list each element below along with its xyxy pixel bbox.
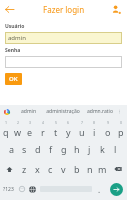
staticText: a (9, 143, 15, 155)
button[interactable]: admin (14, 105, 42, 118)
button[interactable]: Apagar (109, 159, 127, 179)
staticText: e (27, 126, 33, 138)
staticText: s (22, 143, 27, 155)
button[interactable]: 0 (114, 119, 127, 139)
staticText: . (98, 184, 101, 195)
button[interactable]: Shift (0, 159, 18, 179)
button[interactable]: g (57, 139, 70, 159)
button[interactable]: OK (5, 73, 22, 85)
button[interactable]: 7 (75, 119, 88, 139)
staticText: 9 (107, 120, 110, 125)
staticText: f (49, 143, 53, 155)
staticText: c (48, 163, 53, 175)
staticText: q (3, 126, 9, 138)
staticText: v (61, 163, 66, 175)
button[interactable]: Voltar (2, 2, 17, 17)
button[interactable]: 9 (101, 119, 114, 139)
staticText: o (105, 126, 111, 138)
button[interactable]: ?123 (0, 179, 16, 199)
staticText: w (14, 126, 22, 138)
button[interactable]: 4 (36, 119, 49, 139)
staticText: 4 (42, 120, 45, 125)
button[interactable]: . (94, 179, 105, 199)
staticText: 5 (55, 120, 58, 125)
staticText: k (100, 143, 105, 155)
staticText: x (35, 163, 40, 175)
staticText: admn.ratio (87, 108, 113, 115)
staticText: j (88, 143, 91, 155)
button[interactable]: b (70, 159, 83, 179)
button[interactable]: 6 (62, 119, 75, 139)
button[interactable]: v (57, 159, 70, 179)
staticText: z (22, 163, 27, 175)
staticText: t (54, 126, 58, 138)
staticText: n (87, 163, 93, 175)
staticText: m (98, 163, 107, 175)
staticText: p (118, 126, 124, 138)
button[interactable]: s (18, 139, 31, 159)
staticText: admin (21, 108, 36, 115)
button[interactable]: Mais opções (115, 105, 124, 118)
button[interactable]: z (18, 159, 31, 179)
staticText: r (41, 126, 45, 138)
staticText: 3 (29, 120, 32, 125)
button[interactable]: 2 (12, 119, 24, 139)
button[interactable]: 5 (49, 119, 62, 139)
button[interactable]: a (5, 139, 18, 159)
button[interactable]: m (96, 159, 109, 179)
button[interactable]: admn.ratio (84, 105, 115, 118)
staticText: 0 (120, 120, 123, 125)
staticText: d (35, 143, 41, 155)
staticText: y (66, 126, 71, 138)
button[interactable]: 3 (24, 119, 36, 139)
button[interactable]: Emoji (16, 179, 27, 199)
button[interactable]: c (44, 159, 57, 179)
staticText: ?123 (3, 186, 14, 193)
staticText: Usuário (5, 23, 25, 30)
staticText: b (74, 163, 80, 175)
button[interactable]: 8 (88, 119, 101, 139)
staticText: administração (46, 108, 80, 115)
staticText: g (61, 143, 67, 155)
staticText: OK (9, 75, 18, 83)
button[interactable]: Adicionar usuário (109, 2, 124, 17)
button[interactable]: 1 (0, 119, 12, 139)
button[interactable]: Alterar idioma (27, 179, 38, 199)
staticText: admin (8, 34, 26, 42)
staticText: u (79, 126, 85, 138)
button[interactable]: l (109, 139, 122, 159)
button[interactable]: j (83, 139, 96, 159)
staticText: l (114, 143, 117, 155)
button[interactable]: k (96, 139, 109, 159)
button[interactable]: f (44, 139, 57, 159)
button[interactable] (5, 56, 122, 68)
staticText: 6 (67, 120, 70, 125)
button[interactable]: h (70, 139, 83, 159)
staticText: i (93, 126, 96, 138)
staticText: 7 (81, 120, 84, 125)
button[interactable]: d (31, 139, 44, 159)
button[interactable]: Enter (110, 183, 123, 196)
staticText: Senha (5, 47, 21, 54)
button[interactable]: administração (42, 105, 84, 118)
staticText: Fazer login (43, 4, 85, 15)
button[interactable]: x (31, 159, 44, 179)
button[interactable]: Google (3, 108, 11, 116)
staticText: 1 (5, 120, 8, 125)
staticText: h (74, 143, 80, 155)
button[interactable]: admin (5, 32, 122, 44)
button[interactable]: n (83, 159, 96, 179)
staticText: 2 (17, 120, 20, 125)
staticText: 8 (93, 120, 96, 125)
